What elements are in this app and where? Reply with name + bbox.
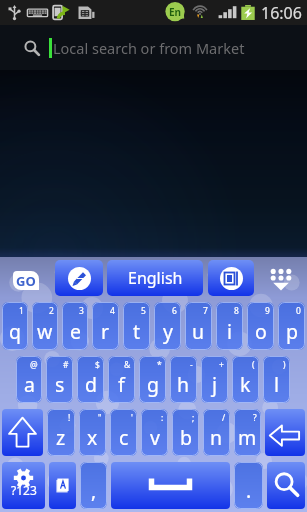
staticText: m bbox=[238, 424, 257, 451]
staticText: & bbox=[124, 359, 131, 371]
button[interactable]: & bbox=[108, 356, 135, 403]
staticText: 5 bbox=[141, 305, 146, 317]
button[interactable]: * bbox=[139, 356, 166, 403]
staticText: 7 bbox=[203, 305, 208, 317]
staticText: . bbox=[246, 477, 252, 504]
staticText: 0 bbox=[296, 305, 301, 317]
staticText: ) bbox=[283, 359, 286, 371]
staticText: g bbox=[147, 371, 159, 398]
staticText: Local search or from Market bbox=[53, 38, 245, 58]
staticText: v bbox=[150, 424, 160, 451]
button[interactable]: 7 bbox=[185, 302, 212, 350]
staticText: p bbox=[286, 318, 298, 345]
button[interactable]: Shift bbox=[2, 409, 43, 456]
staticText: q bbox=[9, 318, 21, 345]
staticText: 2 bbox=[49, 305, 54, 317]
staticText: c bbox=[119, 424, 129, 451]
button[interactable]: $ bbox=[77, 356, 104, 403]
staticText: z bbox=[56, 424, 66, 451]
button[interactable]: ? bbox=[234, 409, 261, 456]
staticText: - bbox=[190, 359, 193, 371]
button[interactable]: Space bbox=[111, 462, 230, 509]
staticText: i bbox=[227, 318, 233, 345]
button[interactable]: : bbox=[141, 409, 168, 456]
staticText: * bbox=[157, 359, 162, 371]
button[interactable]: Symbols bbox=[2, 462, 45, 509]
button[interactable]: ) bbox=[263, 356, 290, 403]
staticText: b bbox=[180, 424, 192, 451]
button[interactable]: 0 bbox=[278, 302, 305, 350]
staticText: e bbox=[70, 318, 81, 345]
staticText: , bbox=[91, 477, 97, 504]
button[interactable]: 3 bbox=[62, 302, 88, 350]
staticText: k bbox=[240, 371, 251, 398]
button[interactable]: 4 bbox=[92, 302, 119, 350]
button[interactable]: 2 bbox=[32, 302, 58, 350]
staticText: 16:06 bbox=[261, 2, 302, 24]
button[interactable]: 6 bbox=[154, 302, 181, 350]
staticText: n bbox=[210, 424, 223, 451]
button[interactable]: Backspace bbox=[265, 409, 305, 456]
staticText: " bbox=[98, 412, 102, 424]
button[interactable]: # bbox=[46, 356, 73, 403]
staticText: a bbox=[24, 371, 35, 398]
staticText: y bbox=[163, 318, 173, 345]
button[interactable]: - bbox=[170, 356, 197, 403]
staticText: s bbox=[55, 371, 65, 398]
staticText: 1 bbox=[19, 305, 24, 317]
staticText: r bbox=[101, 318, 110, 345]
button[interactable]: 1 bbox=[2, 302, 28, 350]
staticText: w bbox=[37, 318, 53, 345]
staticText: f bbox=[118, 371, 125, 398]
staticText: 3 bbox=[79, 305, 84, 317]
button[interactable]: Input language bbox=[49, 462, 76, 509]
staticText: 4 bbox=[110, 305, 115, 317]
staticText: : bbox=[161, 412, 164, 424]
staticText: / bbox=[222, 412, 226, 424]
button[interactable]: Search bbox=[267, 462, 305, 509]
button[interactable]: . bbox=[234, 462, 263, 509]
button[interactable]: ; bbox=[172, 409, 199, 456]
staticText: ' bbox=[131, 412, 133, 424]
staticText: 6 bbox=[172, 305, 177, 317]
staticText: En bbox=[169, 5, 182, 19]
button[interactable]: Edit bbox=[55, 260, 103, 296]
staticText: + bbox=[219, 359, 224, 371]
staticText: l bbox=[274, 371, 280, 398]
button[interactable]: " bbox=[79, 409, 106, 456]
button[interactable]: Window mode bbox=[208, 260, 254, 296]
staticText: $ bbox=[95, 359, 100, 371]
staticText: 9 bbox=[265, 305, 270, 317]
button[interactable]: , bbox=[80, 462, 107, 509]
button[interactable]: GO Keyboard bbox=[0, 257, 55, 299]
button[interactable]: ! bbox=[47, 409, 75, 456]
staticText: o bbox=[255, 318, 267, 345]
button[interactable]: 5 bbox=[123, 302, 150, 350]
button[interactable]: @ bbox=[16, 356, 42, 403]
staticText: ; bbox=[192, 412, 195, 424]
button[interactable]: English bbox=[107, 260, 203, 296]
staticText: # bbox=[63, 359, 69, 371]
button[interactable]: 8 bbox=[216, 302, 243, 350]
staticText: x bbox=[87, 424, 98, 451]
button[interactable]: 9 bbox=[247, 302, 274, 350]
staticText: GO bbox=[16, 272, 36, 290]
staticText: t bbox=[133, 318, 141, 345]
staticText: u bbox=[192, 318, 205, 345]
button[interactable]: + bbox=[201, 356, 228, 403]
staticText: ? bbox=[253, 412, 257, 424]
staticText: ! bbox=[68, 412, 71, 424]
staticText: English bbox=[128, 267, 183, 289]
button[interactable]: ( bbox=[232, 356, 259, 403]
button[interactable]: ' bbox=[110, 409, 137, 456]
staticText: j bbox=[212, 371, 218, 398]
button[interactable]: / bbox=[203, 409, 230, 456]
button[interactable]: More bbox=[254, 257, 307, 299]
staticText: ?123 bbox=[11, 482, 37, 498]
staticText: @ bbox=[30, 359, 38, 371]
staticText: ( bbox=[252, 359, 255, 371]
staticText: d bbox=[85, 371, 97, 398]
staticText: h bbox=[177, 371, 190, 398]
staticText: 8 bbox=[234, 305, 239, 317]
